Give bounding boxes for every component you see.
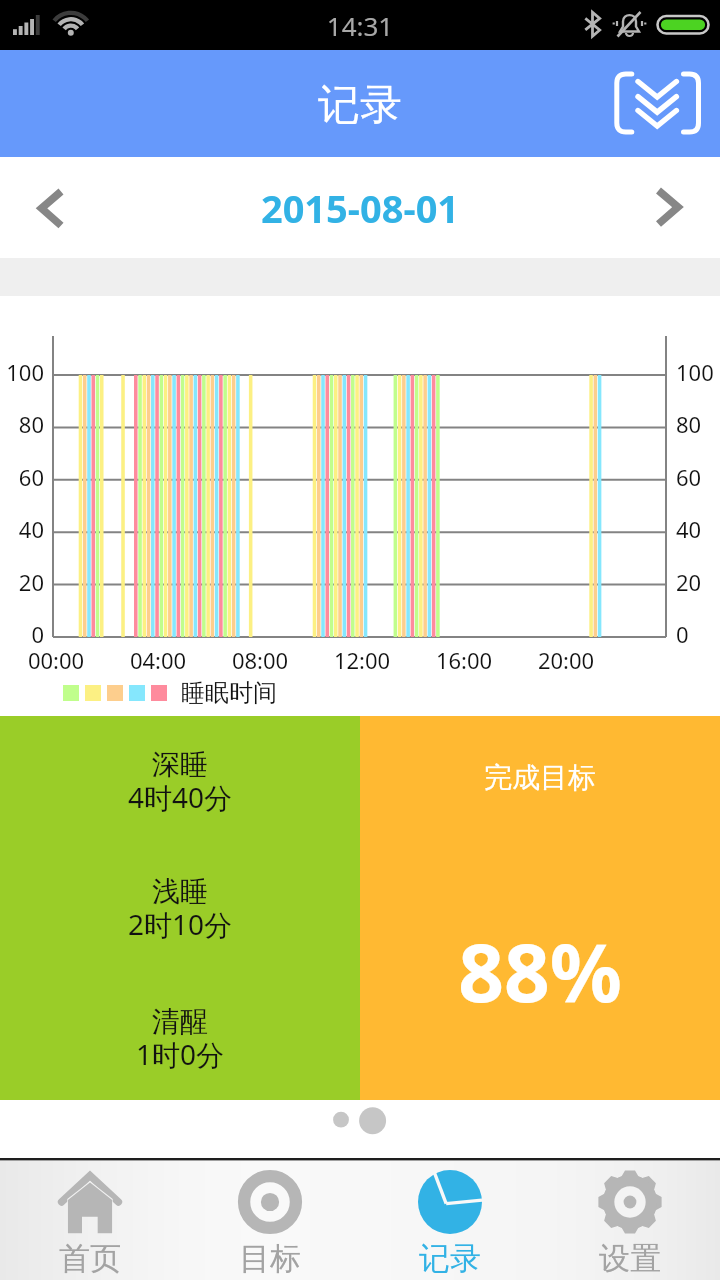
staticText: 00:00 (0, 645, 116, 675)
staticText: 100 (676, 357, 714, 387)
button[interactable]: 首页 (0, 1161, 180, 1280)
button[interactable]: Sync (605, 63, 711, 143)
staticText: 04:00 (98, 645, 218, 675)
staticText: 记录 (0, 79, 720, 132)
staticText: 20:00 (506, 645, 626, 675)
staticText: 设置 (540, 1239, 720, 1278)
staticText: 40 (0, 514, 44, 544)
staticText: 20 (676, 567, 702, 597)
staticText: 目标 (180, 1239, 360, 1278)
staticText: 80 (676, 409, 702, 439)
button[interactable]: 设置 (540, 1161, 720, 1280)
staticText: 60 (676, 462, 702, 492)
staticText: 88% (360, 916, 720, 1025)
button[interactable]: 记录 (360, 1161, 540, 1280)
staticText: 1时0分 (0, 1035, 360, 1073)
staticText: 浅睡 (0, 874, 360, 909)
staticText: 0 (0, 619, 44, 649)
button[interactable]: 完成目标 (360, 716, 720, 1100)
staticText: 清醒 (0, 1004, 360, 1039)
staticText: 首页 (0, 1239, 180, 1278)
staticText: 80 (0, 409, 44, 439)
staticText: 16:00 (404, 645, 524, 675)
staticText: 20 (0, 567, 44, 597)
staticText: 08:00 (200, 645, 320, 675)
staticText: 40 (676, 514, 702, 544)
button[interactable]: 深睡 (0, 716, 360, 1100)
staticText: 记录 (360, 1239, 540, 1278)
staticText: 2时10分 (0, 905, 360, 943)
staticText: 深睡 (0, 747, 360, 782)
button[interactable]: Previous day (10, 157, 100, 258)
staticText: 60 (0, 462, 44, 492)
staticText: 14:31 (0, 8, 720, 43)
staticText: 完成目标 (360, 760, 720, 795)
staticText: 100 (0, 357, 44, 387)
staticText: 睡眠时间 (181, 678, 277, 708)
button[interactable]: Next day (620, 157, 710, 258)
staticText: 2015-08-01 (0, 182, 720, 234)
staticText: 12:00 (302, 645, 422, 675)
button[interactable]: 目标 (180, 1161, 360, 1280)
staticText: 4时40分 (0, 778, 360, 816)
staticText: 0 (676, 619, 689, 649)
